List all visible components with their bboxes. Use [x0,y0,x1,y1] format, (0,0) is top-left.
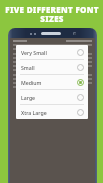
other: Not selected [77,64,84,71]
button[interactable]: Large [16,90,88,104]
other: Not selected [77,109,84,116]
staticText: Small [21,64,77,71]
button[interactable]: Xtra Large [16,105,88,119]
button[interactable]: Medium [16,75,88,89]
button[interactable]: Very Small [16,45,88,59]
staticText: Medium [21,79,77,86]
staticText: Very Small [21,49,77,56]
staticText: FIVE DIFFERENT FONT SIZES [5,4,99,25]
button[interactable]: Small [16,60,88,74]
other: Not selected [77,94,84,101]
other: Selected [77,79,84,86]
staticText: Xtra Large [21,109,77,116]
staticText: Large [21,94,77,101]
other: Not selected [77,49,84,56]
